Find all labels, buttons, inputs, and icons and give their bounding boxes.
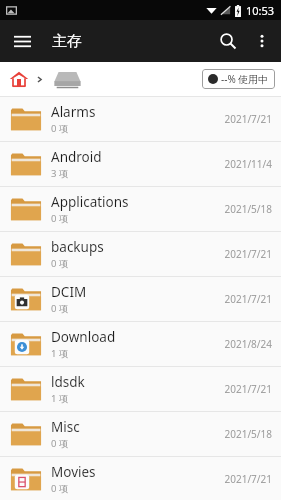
staticText: 0 项 xyxy=(51,482,69,495)
staticText: 主存 xyxy=(52,32,82,51)
staticText: 10:53 xyxy=(246,3,275,18)
staticText: 0 项 xyxy=(51,122,69,135)
button[interactable]: Applications xyxy=(0,187,281,232)
button[interactable]: DCIM xyxy=(0,277,281,322)
button[interactable]: Movies xyxy=(0,457,281,500)
staticText: Download xyxy=(51,328,116,346)
staticText: backups xyxy=(51,238,104,256)
staticText: 2021/5/18 xyxy=(224,427,272,441)
staticText: 0 项 xyxy=(51,302,69,315)
button[interactable]: Search xyxy=(210,23,246,59)
button[interactable]: Alarms xyxy=(0,97,281,142)
button[interactable]: Home xyxy=(7,67,31,91)
staticText: 1 项 xyxy=(51,347,69,360)
staticText: 2021/7/21 xyxy=(224,292,272,306)
button[interactable]: More options xyxy=(246,25,278,57)
staticText: Movies xyxy=(51,463,96,481)
staticText: Misc xyxy=(51,418,80,436)
staticText: 2021/8/24 xyxy=(224,337,272,351)
staticText: 0 项 xyxy=(51,257,69,270)
button[interactable]: --% 使用中 xyxy=(202,69,275,89)
staticText: Applications xyxy=(51,193,129,211)
staticText: 1 项 xyxy=(51,392,69,405)
staticText: 0 项 xyxy=(51,437,69,450)
button[interactable]: Download xyxy=(0,322,281,367)
button[interactable]: Misc xyxy=(0,412,281,457)
staticText: 2021/7/21 xyxy=(224,382,272,396)
staticText: 0 项 xyxy=(51,212,69,225)
button[interactable]: ldsdk xyxy=(0,367,281,412)
button[interactable]: Android xyxy=(0,142,281,187)
staticText: 2021/7/21 xyxy=(224,112,272,126)
staticText: --% 使用中 xyxy=(221,72,269,86)
staticText: 2021/7/21 xyxy=(224,472,272,486)
staticText: 2021/11/4 xyxy=(224,157,272,171)
staticText: Android xyxy=(51,148,102,166)
staticText: 3 项 xyxy=(51,167,69,180)
staticText: Alarms xyxy=(51,103,96,121)
staticText: ldsdk xyxy=(51,373,85,391)
staticText: 2021/5/18 xyxy=(224,202,272,216)
button[interactable]: Open navigation menu xyxy=(6,25,38,57)
button[interactable]: backups xyxy=(0,232,281,277)
staticText: 2021/7/21 xyxy=(224,247,272,261)
button[interactable]: Internal storage xyxy=(51,66,83,92)
staticText: DCIM xyxy=(51,283,87,301)
